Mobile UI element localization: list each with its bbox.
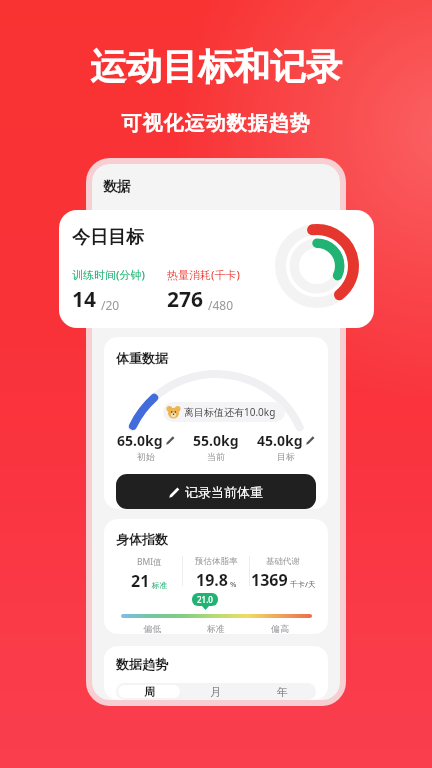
staticText: 数据 [103, 178, 131, 196]
staticText: 21.0 [197, 594, 213, 605]
staticText: 偏高 [248, 623, 312, 634]
staticText: 偏低 [121, 623, 184, 634]
staticText: 记录当前体重 [185, 484, 263, 500]
staticText: 基础代谢 [266, 556, 300, 567]
staticText: 目标 [277, 451, 295, 462]
staticText: 21 [131, 570, 150, 592]
staticText: 可视化运动数据趋势 [0, 111, 432, 136]
staticText: 热量消耗(千卡) [167, 267, 240, 282]
staticText: 65.0kg [117, 431, 163, 450]
staticText: 身体指数 [116, 531, 168, 547]
staticText: 年 [277, 685, 288, 698]
button[interactable]: 今日目标 [59, 210, 374, 328]
staticText: 运动目标和记录 [0, 44, 432, 89]
button[interactable]: 记录当前体重 [116, 474, 316, 509]
staticText: 训练时间(分钟) [72, 267, 145, 282]
staticText: 初始 [137, 451, 155, 462]
staticText: 14 [72, 285, 97, 314]
staticText: 55.0kg [193, 431, 239, 450]
staticText: 当前 [207, 451, 225, 462]
staticText: BMI值 [137, 556, 162, 568]
staticText: 今日目标 [72, 226, 144, 249]
staticText: 标准 [184, 623, 248, 634]
staticText: 预估体脂率 [195, 556, 238, 567]
staticText: 45.0kg [257, 431, 303, 450]
button[interactable]: 年 [251, 685, 314, 698]
staticText: 周 [144, 685, 155, 698]
staticText: 离目标值还有10.0kg [184, 405, 276, 419]
staticText: 体重数据 [116, 350, 168, 366]
staticText: /20 [101, 297, 120, 313]
staticText: % [230, 579, 237, 589]
staticText: 19.8 [196, 569, 228, 591]
staticText: 标准 [152, 581, 167, 590]
staticText: 276 [167, 285, 204, 314]
staticText: /480 [208, 297, 234, 313]
staticText: 月 [210, 685, 221, 698]
staticText: 数据趋势 [116, 656, 168, 672]
button[interactable]: 周 [118, 685, 180, 698]
staticText: 千卡/天 [290, 579, 316, 589]
staticText: 1369 [251, 569, 288, 591]
button[interactable]: 月 [184, 685, 247, 698]
